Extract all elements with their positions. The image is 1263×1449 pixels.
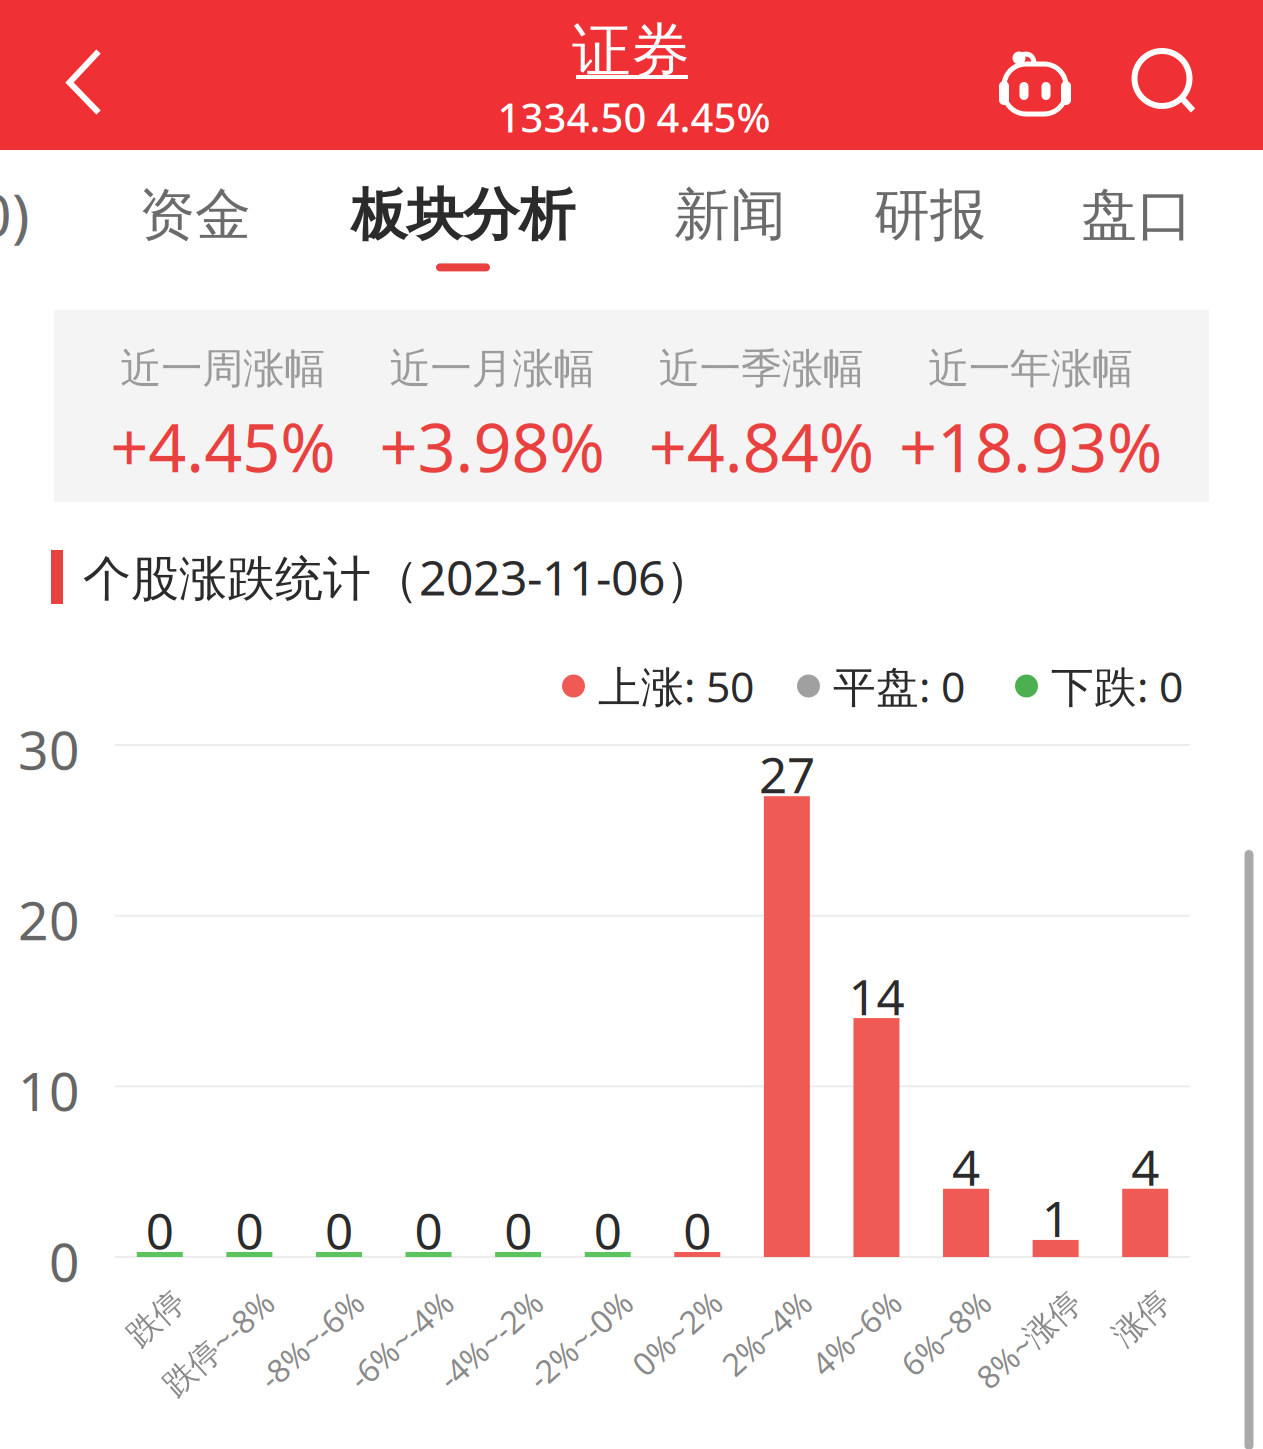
staticText: 上涨: 50: [598, 658, 754, 714]
staticText: -2%~-0%: [500, 1276, 628, 1318]
staticText: 0: [325, 1197, 353, 1263]
staticText: +18.93%: [899, 402, 1162, 491]
button[interactable]: AI assistant: [980, 6, 1090, 156]
staticText: 30: [18, 714, 80, 784]
button[interactable]: Search: [1109, 5, 1219, 155]
button[interactable]: Back: [19, 7, 149, 157]
staticText: 涨停: [1101, 1277, 1165, 1317]
staticText: -6%~-4%: [320, 1276, 448, 1318]
staticText: 10: [18, 1055, 80, 1126]
staticText: 0: [146, 1197, 174, 1263]
staticText: 研报: [874, 181, 986, 249]
staticText: 平盘: 0: [833, 658, 965, 714]
staticText: 0: [504, 1197, 532, 1263]
staticText: 20: [18, 884, 80, 955]
staticText: 0: [235, 1197, 263, 1263]
staticText: 4%~6%: [788, 1276, 896, 1318]
staticText: 资金: [139, 181, 251, 249]
staticText: 跌停: [116, 1277, 180, 1317]
staticText: 14: [848, 963, 904, 1029]
staticText: 27: [759, 741, 815, 807]
staticText: +4.45%: [110, 402, 335, 491]
staticText: 近一月涨幅: [389, 343, 594, 394]
staticText: 8%~涨停: [949, 1276, 1076, 1318]
staticText: 盘口: [1081, 181, 1193, 249]
button[interactable]: 盘口: [1081, 161, 1193, 291]
staticText: 4: [1131, 1134, 1159, 1199]
staticText: 0): [0, 175, 30, 253]
staticText: 近一年涨幅: [928, 343, 1133, 394]
button[interactable]: 板块分析: [351, 161, 575, 291]
staticText: +4.84%: [649, 402, 874, 491]
staticText: 证券: [572, 15, 690, 87]
staticText: 1: [1042, 1185, 1070, 1251]
button[interactable]: 研报: [874, 161, 986, 291]
staticText: 个股涨跌统计（2023-11-06）: [83, 545, 713, 609]
staticText: 4: [952, 1134, 980, 1199]
staticText: 0%~2%: [609, 1276, 717, 1318]
staticText: 0: [594, 1197, 622, 1263]
staticText: 0: [683, 1197, 711, 1263]
staticText: 下跌: 0: [1051, 658, 1183, 714]
staticText: 跌停~-8%: [132, 1276, 269, 1318]
staticText: 6%~8%: [878, 1276, 986, 1318]
staticText: 1334.50 4.45%: [497, 90, 770, 143]
staticText: 近一周涨幅: [120, 343, 325, 394]
staticText: -4%~-2%: [410, 1276, 538, 1318]
staticText: +3.98%: [379, 402, 604, 491]
staticText: -8%~-6%: [231, 1276, 359, 1318]
button[interactable]: 资金: [139, 161, 251, 291]
staticText: 0: [49, 1226, 80, 1296]
staticText: 板块分析: [351, 181, 575, 249]
staticText: 2%~4%: [699, 1276, 807, 1318]
staticText: 近一季涨幅: [659, 343, 864, 394]
button[interactable]: 新闻: [674, 161, 786, 291]
staticText: 新闻: [674, 181, 786, 249]
staticText: 0: [414, 1197, 442, 1263]
